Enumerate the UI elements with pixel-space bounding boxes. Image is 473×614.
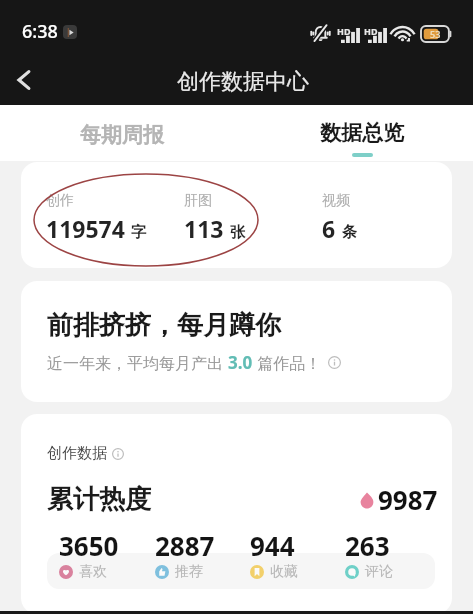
- staticText: 数据总览: [320, 120, 404, 146]
- staticText: 字: [131, 223, 146, 242]
- staticText: 944: [250, 528, 295, 563]
- button[interactable]: 数据总览: [242, 105, 473, 161]
- staticText: 推荐: [175, 563, 203, 581]
- staticText: 每期周报: [80, 122, 164, 148]
- staticText: 6:38: [22, 19, 58, 44]
- staticText: 创作: [46, 192, 74, 210]
- staticText: HD: [364, 25, 378, 37]
- staticText: 9987: [378, 482, 438, 517]
- staticText: 前排挤挤，每月蹲你: [47, 309, 281, 342]
- staticText: 评论: [365, 563, 393, 581]
- staticText: 肝图: [184, 192, 212, 210]
- button[interactable]: 每期周报: [2, 105, 242, 161]
- staticText: 53: [430, 28, 441, 40]
- button[interactable]: 创作: [21, 162, 452, 268]
- staticText: 累计热度: [47, 483, 151, 516]
- staticText: 喜欢: [79, 563, 107, 581]
- staticText: 3.0: [228, 351, 253, 374]
- button[interactable]: 创作数据: [21, 414, 452, 614]
- staticText: 263: [345, 528, 390, 563]
- staticText: 近一年来，平均每月产出: [47, 352, 228, 374]
- staticText: 119574: [46, 213, 125, 244]
- staticText: 张: [230, 223, 245, 242]
- staticText: 113: [184, 213, 224, 244]
- staticText: 篇作品！: [253, 352, 322, 374]
- staticText: 2887: [155, 528, 215, 563]
- staticText: 创作数据中心: [177, 68, 309, 96]
- button[interactable]: Back: [2, 58, 46, 102]
- staticText: 视频: [322, 192, 350, 210]
- staticText: 收藏: [270, 563, 298, 581]
- staticText: 创作数据: [47, 444, 107, 463]
- button[interactable]: 前排挤挤，每月蹲你: [21, 281, 452, 402]
- staticText: 条: [342, 223, 357, 242]
- staticText: 6: [322, 213, 336, 244]
- staticText: 3650: [59, 528, 119, 563]
- staticText: HD: [337, 25, 351, 37]
